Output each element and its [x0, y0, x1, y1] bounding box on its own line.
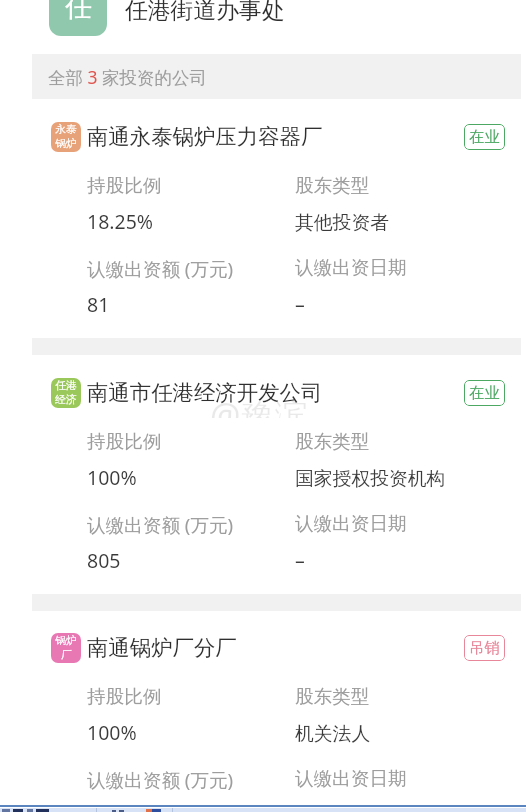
staticText: 持股比例: [87, 685, 162, 708]
staticText: 持股比例: [87, 174, 162, 197]
staticText: –: [295, 547, 305, 574]
button[interactable]: Organisation avatar: [49, 0, 107, 36]
staticText: 全部 3 家投资的公司: [48, 65, 208, 89]
staticText: 机关法人: [295, 722, 371, 746]
staticText: 国家授权投资机构: [295, 467, 446, 491]
staticText: 100%: [87, 719, 137, 746]
staticText: 认缴出资额 (万元): [87, 512, 234, 537]
button[interactable]: 在业: [464, 380, 505, 406]
button[interactable]: Company logo: [0, 99, 526, 338]
button[interactable]: Company logo: [51, 378, 81, 408]
button[interactable]: Company logo: [0, 610, 526, 803]
staticText: 任: [65, 0, 92, 24]
staticText: –: [295, 291, 305, 318]
button[interactable]: 在业: [464, 124, 505, 150]
staticText: 股东类型: [295, 430, 370, 453]
staticText: 股东类型: [295, 174, 370, 197]
staticText: 厂: [61, 648, 72, 662]
staticText: 其他投资者: [295, 211, 389, 235]
button[interactable]: Taskbar: [0, 805, 526, 812]
button[interactable]: Company logo: [51, 122, 81, 152]
staticText: 805: [87, 547, 121, 574]
staticText: 经济: [55, 393, 77, 407]
staticText: 100%: [87, 464, 137, 491]
staticText: 锅炉: [55, 137, 77, 151]
staticText: 81: [87, 291, 110, 318]
staticText: 认缴出资额 (万元): [87, 767, 234, 792]
staticText: 在业: [469, 127, 500, 147]
staticText: 南通永泰锅炉压力容器厂: [87, 123, 323, 150]
staticText: 任港: [55, 379, 77, 393]
staticText: 认缴出资额 (万元): [87, 256, 234, 281]
staticText: 股东类型: [295, 685, 370, 708]
button[interactable]: Company logo: [0, 355, 526, 594]
staticText: 任港街道办事处: [125, 0, 285, 25]
staticText: 在业: [469, 383, 500, 403]
staticText: 吊销: [469, 638, 500, 658]
staticText: @豫滨: [210, 398, 309, 418]
staticText: 认缴出资日期: [295, 256, 407, 279]
staticText: 南通市任港经济开发公司: [87, 379, 323, 406]
staticText: 锅炉: [55, 634, 77, 648]
staticText: 18.25%: [87, 208, 154, 235]
button[interactable]: 吊销: [464, 635, 505, 661]
button[interactable]: 全部 3 家投资的公司: [32, 54, 521, 99]
staticText: 认缴出资日期: [295, 512, 407, 535]
button[interactable]: Company logo: [51, 633, 81, 663]
staticText: 南通锅炉厂分厂: [87, 634, 237, 661]
staticText: 永泰: [55, 123, 77, 137]
staticText: 认缴出资日期: [295, 767, 407, 790]
staticText: 持股比例: [87, 430, 162, 453]
